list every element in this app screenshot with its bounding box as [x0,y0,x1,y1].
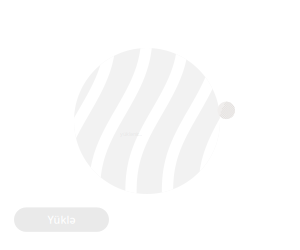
staticText: yüklənir… [120,130,142,138]
button[interactable]: Yüklə [14,207,109,232]
staticText: Yüklə [47,213,75,227]
